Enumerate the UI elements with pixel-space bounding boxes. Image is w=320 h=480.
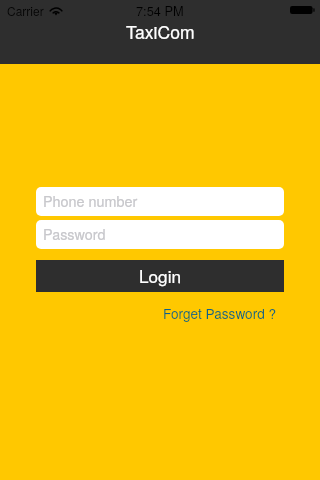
button[interactable]: Login bbox=[36, 260, 284, 292]
staticText: Carrier bbox=[7, 2, 44, 19]
staticText: TaxiCom bbox=[126, 19, 195, 44]
staticText: Login bbox=[139, 263, 182, 288]
button[interactable]: Password bbox=[36, 220, 284, 249]
other: Wi-Fi bbox=[50, 6, 62, 16]
staticText: Password bbox=[43, 223, 106, 244]
button[interactable]: Phone number bbox=[36, 187, 284, 216]
button[interactable]: Forget Password ? bbox=[161, 301, 279, 324]
other: Battery bbox=[290, 6, 314, 14]
staticText: 7:54 PM bbox=[136, 1, 184, 19]
staticText: Phone number bbox=[43, 190, 138, 211]
staticText: Forget Password ? bbox=[163, 303, 277, 322]
